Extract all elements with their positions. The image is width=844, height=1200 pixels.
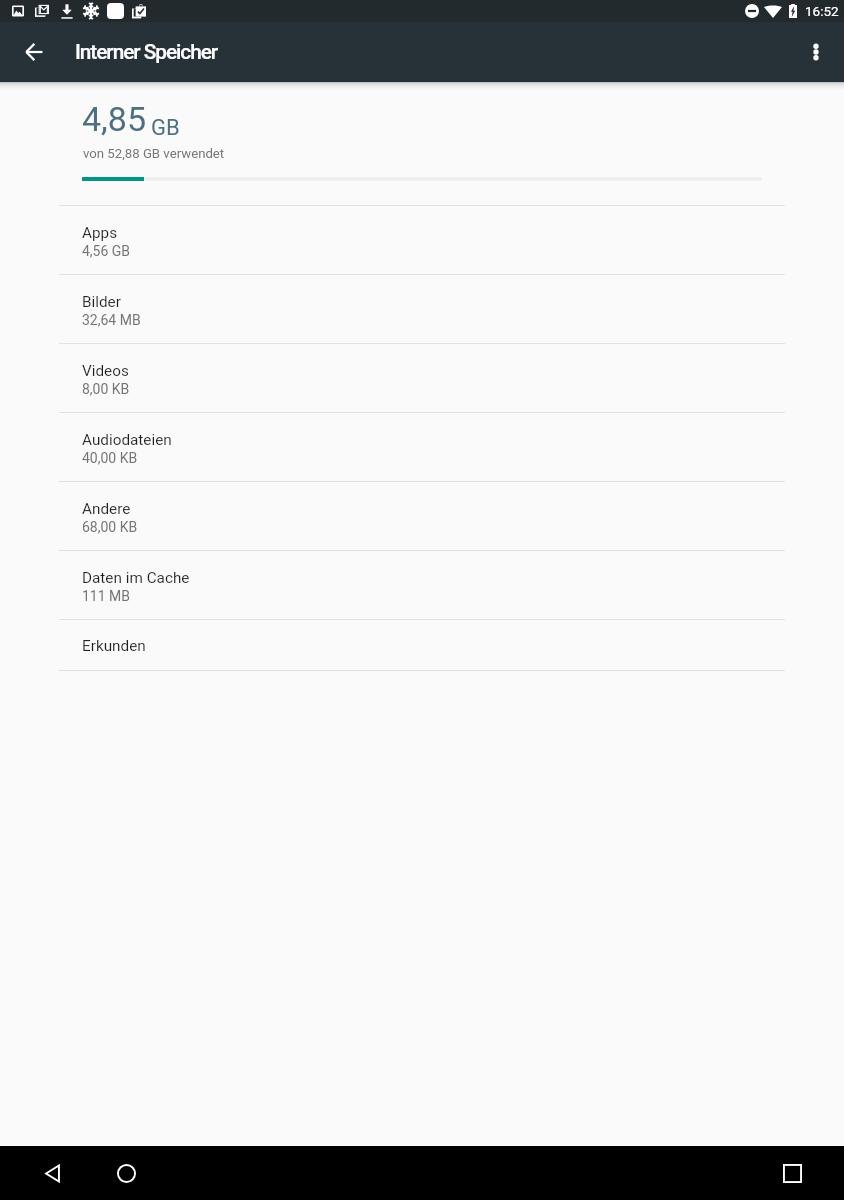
button[interactable]: Bilder [0,275,844,344]
staticText: 4,85 [82,99,147,139]
staticText: 40,00 KB [82,450,138,466]
staticText: GB [151,115,180,141]
button[interactable]: Back [28,1149,76,1197]
staticText: Daten im Cache [82,569,190,587]
staticText: 4,56 GB [82,243,131,259]
staticText: Videos [82,362,129,380]
staticText: von 52,88 GB verwendet [83,146,225,161]
button[interactable]: Recent apps [768,1149,816,1197]
staticText: Interner Speicher [75,40,218,64]
button[interactable]: More options [792,28,840,76]
staticText: 68,00 KB [82,519,138,535]
staticText: Apps [82,224,118,242]
staticText: Bilder [82,293,121,311]
button[interactable]: Daten im Cache [0,551,844,620]
button[interactable]: Andere [0,482,844,551]
button[interactable]: Apps [0,206,844,275]
staticText: Audiodateien [82,431,172,449]
staticText: 16:52 [805,3,839,19]
button[interactable]: Videos [0,344,844,413]
button[interactable]: Erkunden [0,620,844,671]
button[interactable]: Audiodateien [0,413,844,482]
staticText: 32,64 MB [82,312,141,328]
staticText: 111 MB [82,588,131,604]
staticText: Andere [82,500,131,518]
staticText: Erkunden [82,637,146,655]
button[interactable]: Home [102,1149,150,1197]
button[interactable]: Back [10,28,58,76]
staticText: 8,00 KB [82,381,130,397]
